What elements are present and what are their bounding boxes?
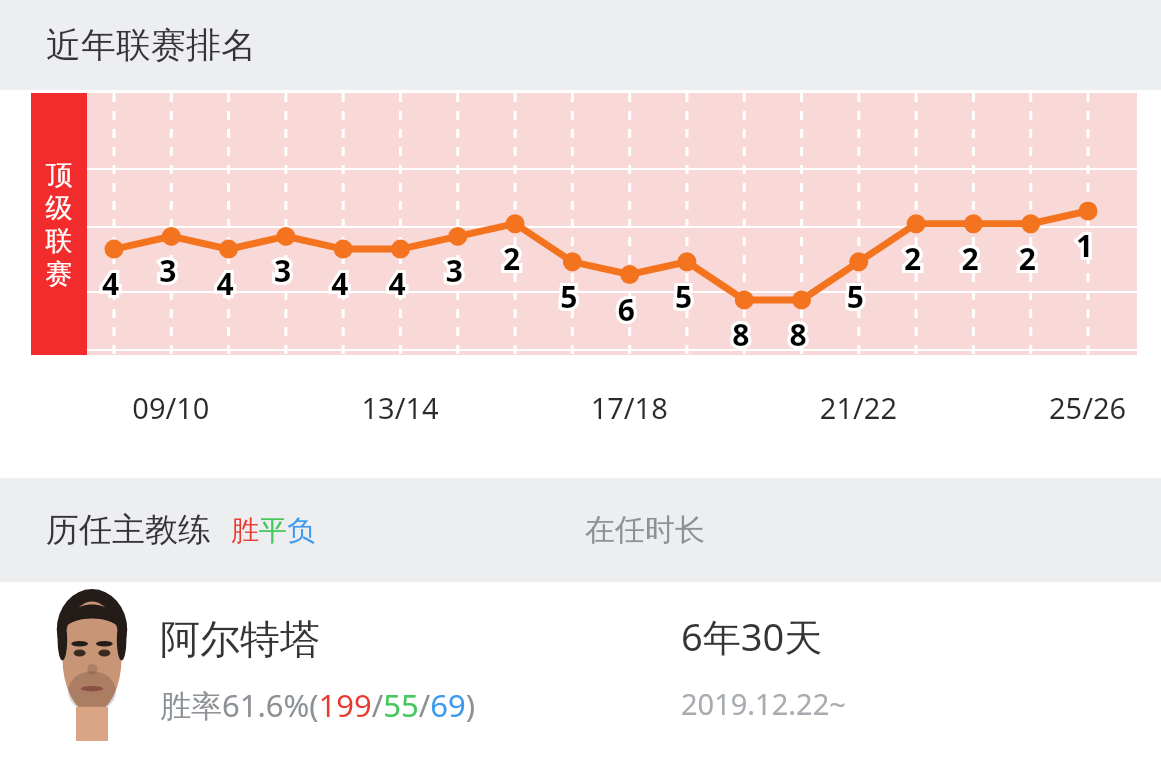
button[interactable] [0,90,1161,478]
button[interactable]: 历任主教练 [0,478,1161,582]
button[interactable]: 阿尔特塔 头像 [0,582,1161,757]
other: 阿尔特塔 头像 [52,586,132,741]
staticText: 6年30天 [681,610,823,662]
staticText: 阿尔特塔 [160,614,320,664]
staticText: 在任时长 [585,511,705,549]
staticText: 胜平负 [231,513,315,548]
button[interactable]: 近年联赛排名 [0,0,1161,90]
staticText: 历任主教练 [46,509,211,551]
staticText: 2019.12.22~ [681,684,846,723]
staticText: 近年联赛排名 [46,23,256,67]
staticText: 胜率61.6%(199/55/69) [160,684,476,726]
